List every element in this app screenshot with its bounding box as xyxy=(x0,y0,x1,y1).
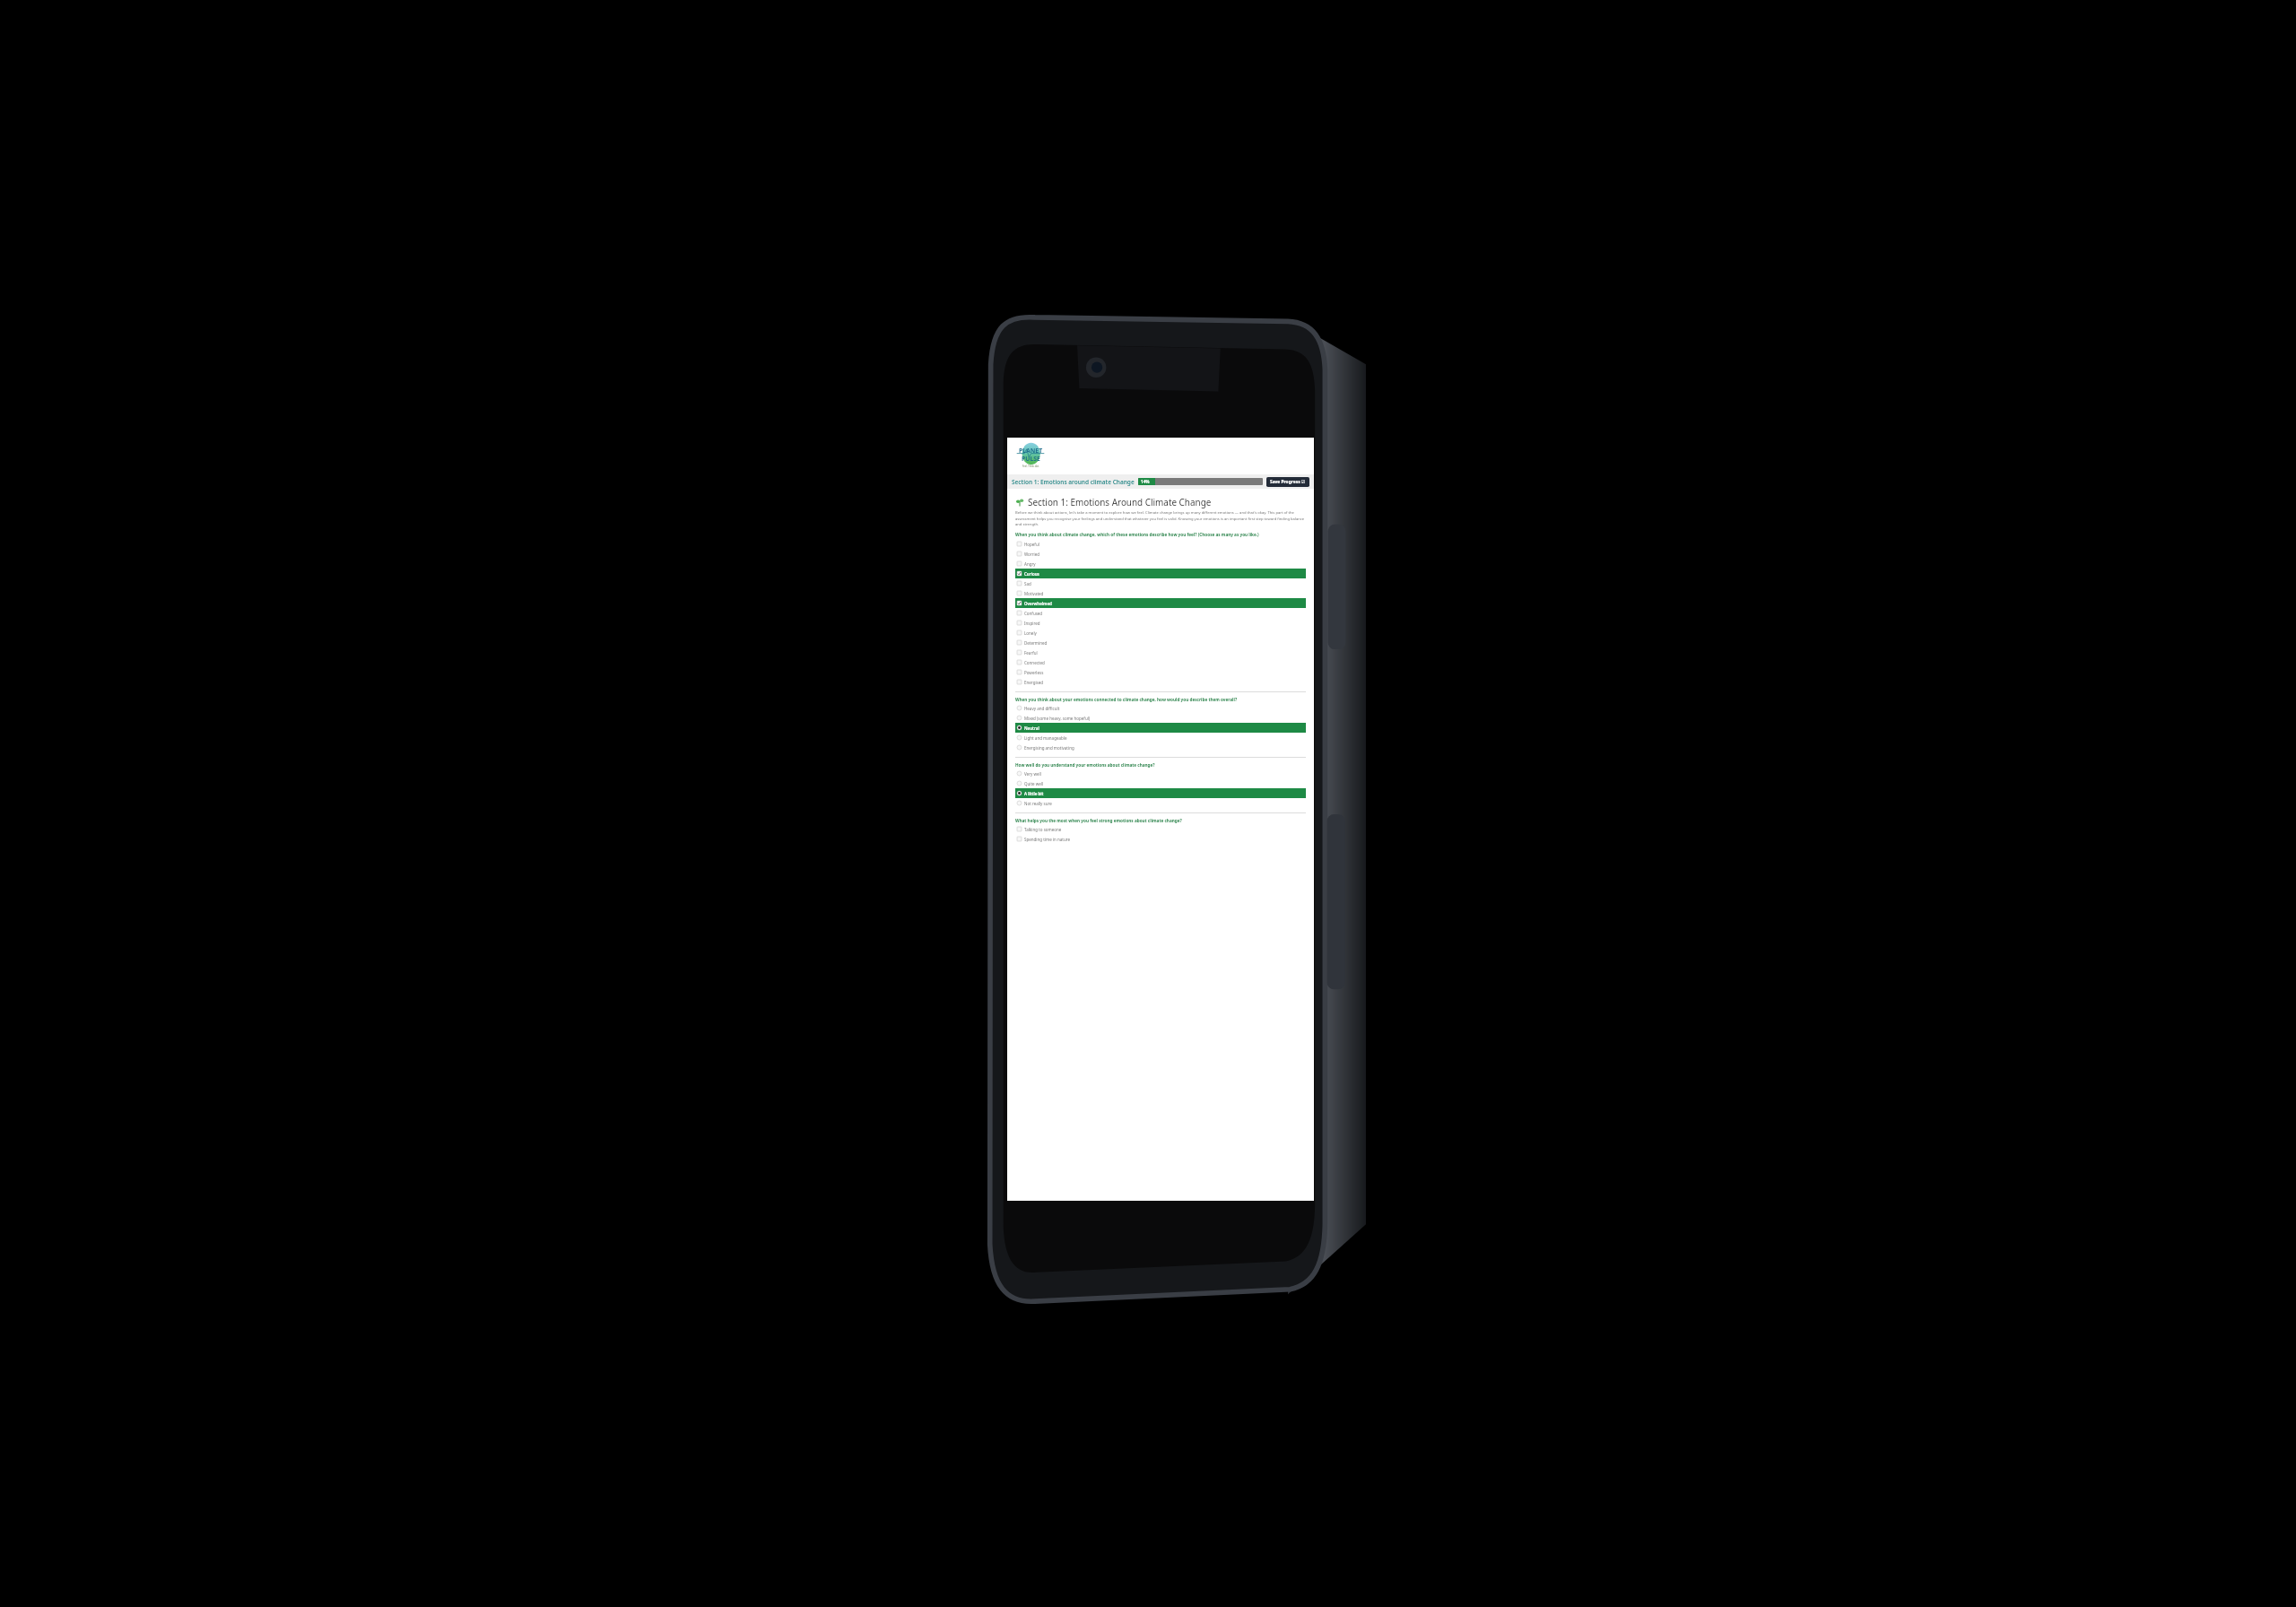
staticText: Inspired xyxy=(1024,621,1040,626)
staticText: Energised xyxy=(1024,680,1044,685)
staticText: Worried xyxy=(1024,552,1040,557)
button[interactable]: Worried xyxy=(1015,549,1306,559)
staticText: Before we think about actions, let's tak… xyxy=(1015,510,1306,526)
staticText: Mixed (some heavy, some hopeful) xyxy=(1024,716,1091,721)
button[interactable]: Talking to someone xyxy=(1015,824,1306,834)
button[interactable]: Light and manageable xyxy=(1015,733,1306,743)
staticText: When you think about climate change, whi… xyxy=(1015,532,1259,537)
staticText: Heavy and difficult xyxy=(1024,706,1060,711)
button[interactable]: Energised xyxy=(1015,677,1306,687)
button[interactable]: Hopeful xyxy=(1015,539,1306,549)
staticText: Spending time in nature xyxy=(1024,837,1071,842)
button[interactable]: Motivated xyxy=(1015,588,1306,598)
button[interactable]: Inspired xyxy=(1015,618,1306,628)
staticText: How well do you understand your emotions… xyxy=(1015,762,1155,768)
staticText: PLANET xyxy=(1019,447,1043,455)
button[interactable]: Curious xyxy=(1015,569,1306,578)
staticText: Fearful xyxy=(1024,650,1038,656)
button[interactable]: Confused xyxy=(1015,608,1306,618)
button[interactable]: Lonely xyxy=(1015,628,1306,638)
button[interactable]: A little bit xyxy=(1015,788,1306,798)
staticText: Not really sure xyxy=(1024,801,1052,806)
button[interactable]: Neutral xyxy=(1015,723,1306,733)
button[interactable]: Quite well xyxy=(1015,778,1306,788)
button[interactable]: Angry xyxy=(1015,559,1306,569)
staticText: Curious xyxy=(1024,571,1039,577)
staticText: A little bit xyxy=(1024,791,1044,796)
staticText: Connected xyxy=(1024,660,1045,665)
button[interactable]: Spending time in nature xyxy=(1015,834,1306,844)
staticText: Light and manageable xyxy=(1024,735,1067,741)
staticText: Determined xyxy=(1024,640,1048,646)
button[interactable]: Overwhelmed xyxy=(1015,598,1306,608)
staticText: Talking to someone xyxy=(1024,827,1062,832)
staticText: Sad xyxy=(1024,581,1031,586)
staticText: Feel. Think. Act. xyxy=(1022,465,1039,467)
button[interactable]: Not really sure xyxy=(1015,798,1306,808)
button[interactable]: Connected xyxy=(1015,657,1306,667)
button[interactable]: Powerless xyxy=(1015,667,1306,677)
button[interactable]: Save Progress ☑ xyxy=(1266,477,1309,487)
button[interactable]: Energising and motivating xyxy=(1015,743,1306,752)
button[interactable]: Determined xyxy=(1015,638,1306,647)
staticText: Neutral xyxy=(1024,725,1039,731)
button[interactable]: Mixed (some heavy, some hopeful) xyxy=(1015,713,1306,723)
staticText: Lonely xyxy=(1024,630,1037,636)
staticText: Section 1: Emotions around climate Chang… xyxy=(1012,478,1135,486)
staticText: Overwhelmed xyxy=(1024,601,1052,606)
staticText: Section 1: Emotions Around Climate Chang… xyxy=(1028,496,1212,508)
staticText: When you think about your emotions conne… xyxy=(1015,697,1238,702)
button[interactable]: Very well xyxy=(1015,769,1306,778)
staticText: Hopeful xyxy=(1024,542,1039,547)
staticText: What helps you the most when you feel st… xyxy=(1015,818,1182,823)
button[interactable]: Heavy and difficult xyxy=(1015,703,1306,713)
staticText: Angry xyxy=(1024,561,1036,567)
staticText: Motivated xyxy=(1024,591,1044,596)
button[interactable]: Fearful xyxy=(1015,647,1306,657)
staticText: Quite well xyxy=(1024,781,1044,786)
staticText: 14% xyxy=(1141,479,1150,484)
staticText: Confused xyxy=(1024,611,1043,616)
staticText: PULSE xyxy=(1022,455,1040,463)
staticText: Energising and motivating xyxy=(1024,745,1074,751)
staticText: Save Progress ☑ xyxy=(1270,479,1306,485)
staticText: Very well xyxy=(1024,771,1041,777)
staticText: Powerless xyxy=(1024,670,1044,675)
button[interactable]: Sad xyxy=(1015,578,1306,588)
